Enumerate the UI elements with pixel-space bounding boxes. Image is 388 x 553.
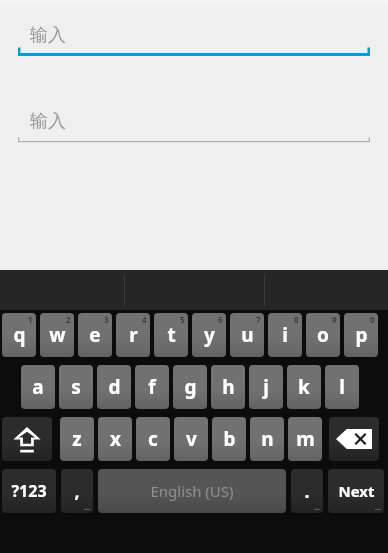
- staticText: b: [223, 426, 236, 452]
- staticText: 2: [66, 314, 71, 325]
- button[interactable]: h: [211, 365, 245, 409]
- button[interactable]: u: [230, 313, 264, 357]
- button[interactable]: g: [173, 365, 207, 409]
- staticText: n: [261, 426, 274, 452]
- button[interactable]: English (US): [98, 469, 286, 513]
- staticText: q: [13, 322, 26, 348]
- button[interactable]: s: [59, 365, 93, 409]
- staticText: k: [298, 374, 310, 400]
- staticText: j: [263, 374, 269, 400]
- button[interactable]: i: [268, 313, 302, 357]
- button[interactable]: a: [21, 365, 55, 409]
- staticText: g: [184, 374, 197, 400]
- button[interactable]: c: [136, 417, 170, 461]
- staticText: ...: [84, 503, 90, 513]
- staticText: w: [49, 322, 66, 348]
- staticText: 1: [28, 314, 33, 325]
- button[interactable]: j: [249, 365, 283, 409]
- button[interactable]: o: [306, 313, 340, 357]
- staticText: o: [317, 322, 329, 348]
- staticText: ?123: [11, 480, 47, 502]
- button[interactable]: x: [98, 417, 132, 461]
- staticText: l: [339, 374, 345, 400]
- staticText: 6: [218, 314, 223, 325]
- staticText: .: [304, 479, 310, 504]
- staticText: u: [241, 322, 254, 348]
- staticText: d: [108, 374, 121, 400]
- staticText: Next: [338, 481, 375, 501]
- staticText: 8: [294, 314, 299, 325]
- button[interactable]: b: [212, 417, 246, 461]
- staticText: ...: [314, 503, 320, 513]
- staticText: 输入: [30, 24, 66, 47]
- staticText: 4: [142, 314, 147, 325]
- button[interactable]: k: [287, 365, 321, 409]
- staticText: a: [32, 374, 44, 400]
- button[interactable]: Shift: [2, 417, 52, 461]
- button[interactable]: l: [325, 365, 359, 409]
- button[interactable]: n: [250, 417, 284, 461]
- staticText: r: [129, 322, 138, 348]
- staticText: m: [296, 426, 315, 452]
- button[interactable]: w: [40, 313, 74, 357]
- button[interactable]: ,: [61, 469, 93, 513]
- staticText: h: [222, 374, 235, 400]
- button[interactable]: y: [192, 313, 226, 357]
- staticText: v: [186, 426, 197, 452]
- staticText: s: [71, 374, 81, 400]
- button[interactable]: e: [78, 313, 112, 357]
- button[interactable]: 输入: [18, 110, 370, 142]
- button[interactable]: m: [288, 417, 322, 461]
- staticText: y: [204, 322, 215, 348]
- staticText: 7: [256, 314, 261, 325]
- staticText: 输入: [30, 110, 66, 133]
- staticText: i: [282, 322, 288, 348]
- button[interactable]: Backspace: [329, 417, 379, 461]
- button[interactable]: Next: [328, 469, 384, 513]
- button[interactable]: .: [291, 469, 323, 513]
- staticText: 3: [104, 314, 109, 325]
- button[interactable]: p: [344, 313, 378, 357]
- staticText: e: [89, 322, 101, 348]
- button[interactable]: 输入: [18, 24, 370, 56]
- staticText: t: [167, 322, 176, 348]
- button[interactable]: q: [2, 313, 36, 357]
- staticText: z: [72, 426, 82, 452]
- staticText: x: [110, 426, 121, 452]
- staticText: f: [148, 374, 156, 400]
- staticText: ,: [74, 479, 80, 504]
- button[interactable]: d: [97, 365, 131, 409]
- staticText: English (US): [150, 481, 234, 501]
- staticText: ...: [375, 503, 381, 513]
- button[interactable]: ?123: [2, 469, 56, 513]
- staticText: 0: [370, 314, 375, 325]
- button[interactable]: r: [116, 313, 150, 357]
- staticText: p: [355, 322, 368, 348]
- staticText: 5: [180, 314, 185, 325]
- button[interactable]: v: [174, 417, 208, 461]
- button[interactable]: z: [60, 417, 94, 461]
- button[interactable]: t: [154, 313, 188, 357]
- staticText: c: [148, 426, 158, 452]
- staticText: 9: [332, 314, 337, 325]
- button[interactable]: f: [135, 365, 169, 409]
